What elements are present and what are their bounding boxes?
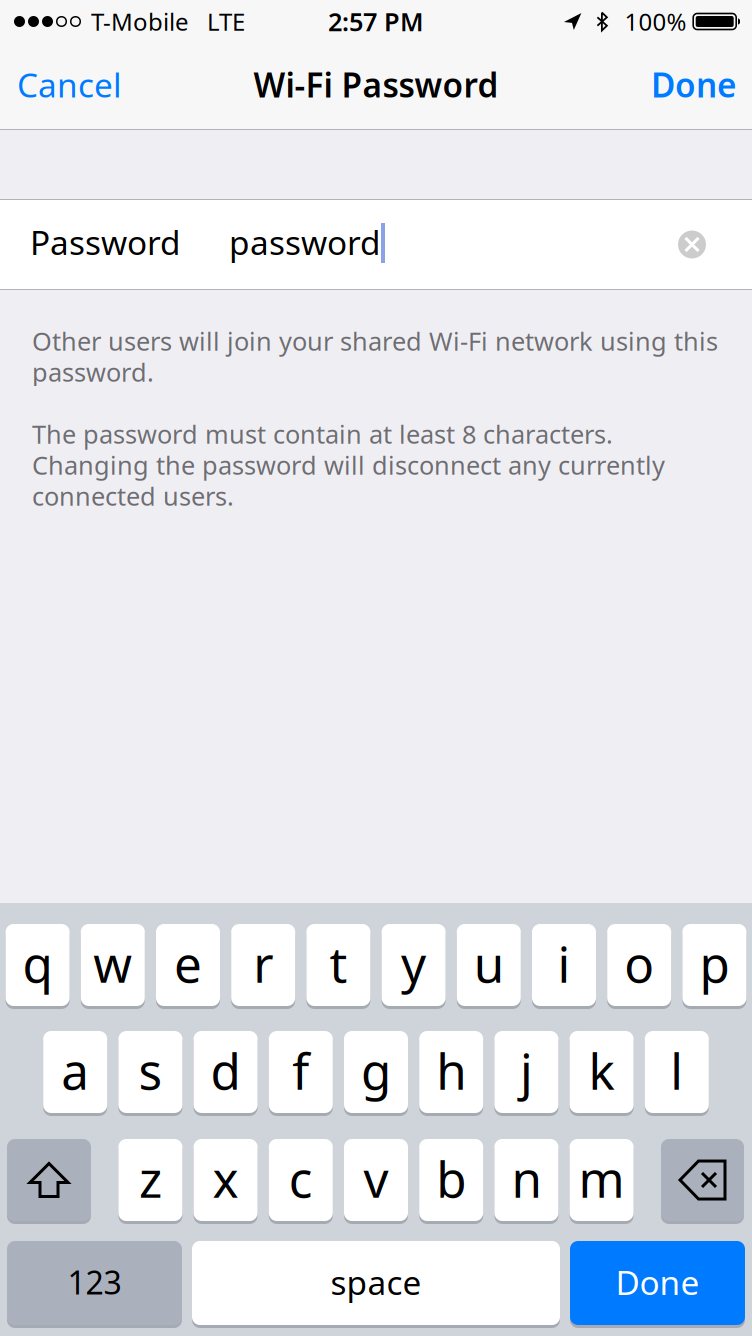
button[interactable]: t: [306, 924, 370, 1009]
staticText: 100%: [624, 6, 686, 37]
staticText: o: [624, 931, 654, 996]
staticText: x: [213, 1146, 239, 1211]
staticText: l: [670, 1038, 683, 1103]
staticText: password: [229, 220, 381, 264]
staticText: i: [557, 931, 570, 996]
button[interactable]: j: [494, 1031, 558, 1116]
staticText: Done: [651, 62, 737, 107]
staticText: f: [292, 1038, 309, 1103]
staticText: b: [436, 1146, 466, 1211]
staticText: 2:57 PM: [328, 5, 424, 38]
button[interactable]: Shift: [7, 1139, 91, 1224]
button[interactable]: d: [194, 1031, 258, 1116]
button[interactable]: x: [194, 1139, 258, 1224]
button[interactable]: g: [344, 1031, 408, 1116]
button[interactable]: n: [494, 1139, 558, 1224]
button[interactable]: 123: [7, 1241, 182, 1328]
staticText: T-Mobile: [91, 6, 189, 37]
staticText: h: [436, 1038, 466, 1103]
button[interactable]: f: [269, 1031, 333, 1116]
button[interactable]: e: [156, 924, 220, 1009]
staticText: 123: [67, 1261, 121, 1303]
staticText: y: [401, 931, 426, 996]
staticText: n: [511, 1146, 541, 1211]
button[interactable]: Done: [570, 1241, 745, 1328]
staticText: connected users.: [32, 479, 234, 513]
button[interactable]: z: [118, 1139, 182, 1224]
button[interactable]: o: [607, 924, 671, 1009]
staticText: a: [61, 1038, 89, 1103]
staticText: c: [289, 1146, 313, 1211]
button[interactable]: q: [6, 924, 70, 1009]
button[interactable]: l: [645, 1031, 709, 1116]
staticText: Done: [615, 1260, 699, 1304]
staticText: e: [174, 931, 202, 996]
staticText: p: [699, 931, 729, 996]
button[interactable]: v: [344, 1139, 408, 1224]
staticText: w: [93, 931, 132, 996]
button[interactable]: h: [419, 1031, 483, 1116]
button[interactable]: y: [382, 924, 446, 1009]
button[interactable]: Delete: [661, 1139, 744, 1224]
button[interactable]: k: [570, 1031, 634, 1116]
button[interactable]: b: [419, 1139, 483, 1224]
staticText: password.: [32, 355, 154, 389]
staticText: g: [361, 1038, 391, 1103]
button[interactable]: space: [192, 1241, 560, 1328]
button[interactable]: r: [231, 924, 295, 1009]
staticText: Changing the password will disconnect an…: [32, 448, 665, 482]
staticText: j: [520, 1038, 533, 1103]
staticText: k: [589, 1038, 615, 1103]
button[interactable]: p: [682, 924, 746, 1009]
staticText: The password must contain at least 8 cha…: [32, 417, 613, 451]
staticText: z: [139, 1146, 162, 1211]
staticText: LTE: [207, 6, 245, 37]
button[interactable]: Cancel: [0, 48, 138, 129]
button[interactable]: u: [457, 924, 521, 1009]
staticText: s: [138, 1038, 162, 1103]
button[interactable]: Done: [634, 48, 752, 129]
button[interactable]: a: [43, 1031, 107, 1116]
staticText: r: [253, 931, 273, 996]
button[interactable]: m: [570, 1139, 634, 1224]
staticText: q: [23, 931, 53, 996]
button[interactable]: Clear text: [670, 222, 714, 266]
staticText: u: [474, 931, 504, 996]
staticText: m: [579, 1146, 625, 1211]
staticText: d: [211, 1038, 241, 1103]
button[interactable]: i: [532, 924, 596, 1009]
staticText: Wi-Fi Password: [253, 62, 498, 107]
staticText: Other users will join your shared Wi-Fi …: [32, 324, 718, 358]
staticText: Password: [30, 220, 181, 264]
staticText: space: [330, 1260, 421, 1304]
button[interactable]: s: [118, 1031, 182, 1116]
staticText: Cancel: [17, 62, 122, 107]
button[interactable]: w: [81, 924, 145, 1009]
staticText: t: [329, 931, 347, 996]
button[interactable]: c: [269, 1139, 333, 1224]
staticText: v: [363, 1146, 388, 1211]
